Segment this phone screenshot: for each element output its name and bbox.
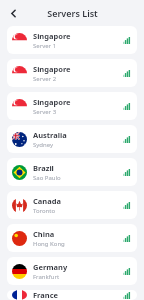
staticText: Australia [33, 130, 67, 140]
staticText: Frankfurt [33, 273, 60, 281]
button[interactable]: Brazil [7, 158, 137, 186]
button[interactable]: Canada [7, 191, 137, 219]
staticText: Brazil [33, 163, 54, 173]
button[interactable]: China [7, 224, 137, 252]
staticText: Sydney [33, 141, 54, 149]
staticText: Sao Paulo [33, 174, 61, 182]
staticText: Hong Kong [33, 240, 65, 248]
staticText: Canada [33, 196, 61, 206]
staticText: Singapore [33, 31, 71, 41]
staticText: Server 1 [33, 42, 57, 50]
staticText: Singapore [33, 97, 71, 107]
staticText: Singapore [33, 64, 71, 74]
button[interactable]: France [7, 290, 137, 300]
staticText: Server 3 [33, 108, 57, 116]
staticText: Servers List [47, 7, 98, 19]
button[interactable]: Singapore [7, 59, 137, 87]
button[interactable]: Back [4, 4, 22, 22]
button[interactable]: Germany [7, 257, 137, 285]
staticText: Server 2 [33, 75, 57, 83]
staticText: China [33, 229, 55, 239]
button[interactable]: Singapore [7, 26, 137, 54]
staticText: Toronto [33, 207, 56, 215]
staticText: France [33, 290, 59, 300]
button[interactable]: Australia [7, 125, 137, 153]
staticText: Germany [33, 262, 68, 272]
button[interactable]: Singapore [7, 92, 137, 120]
